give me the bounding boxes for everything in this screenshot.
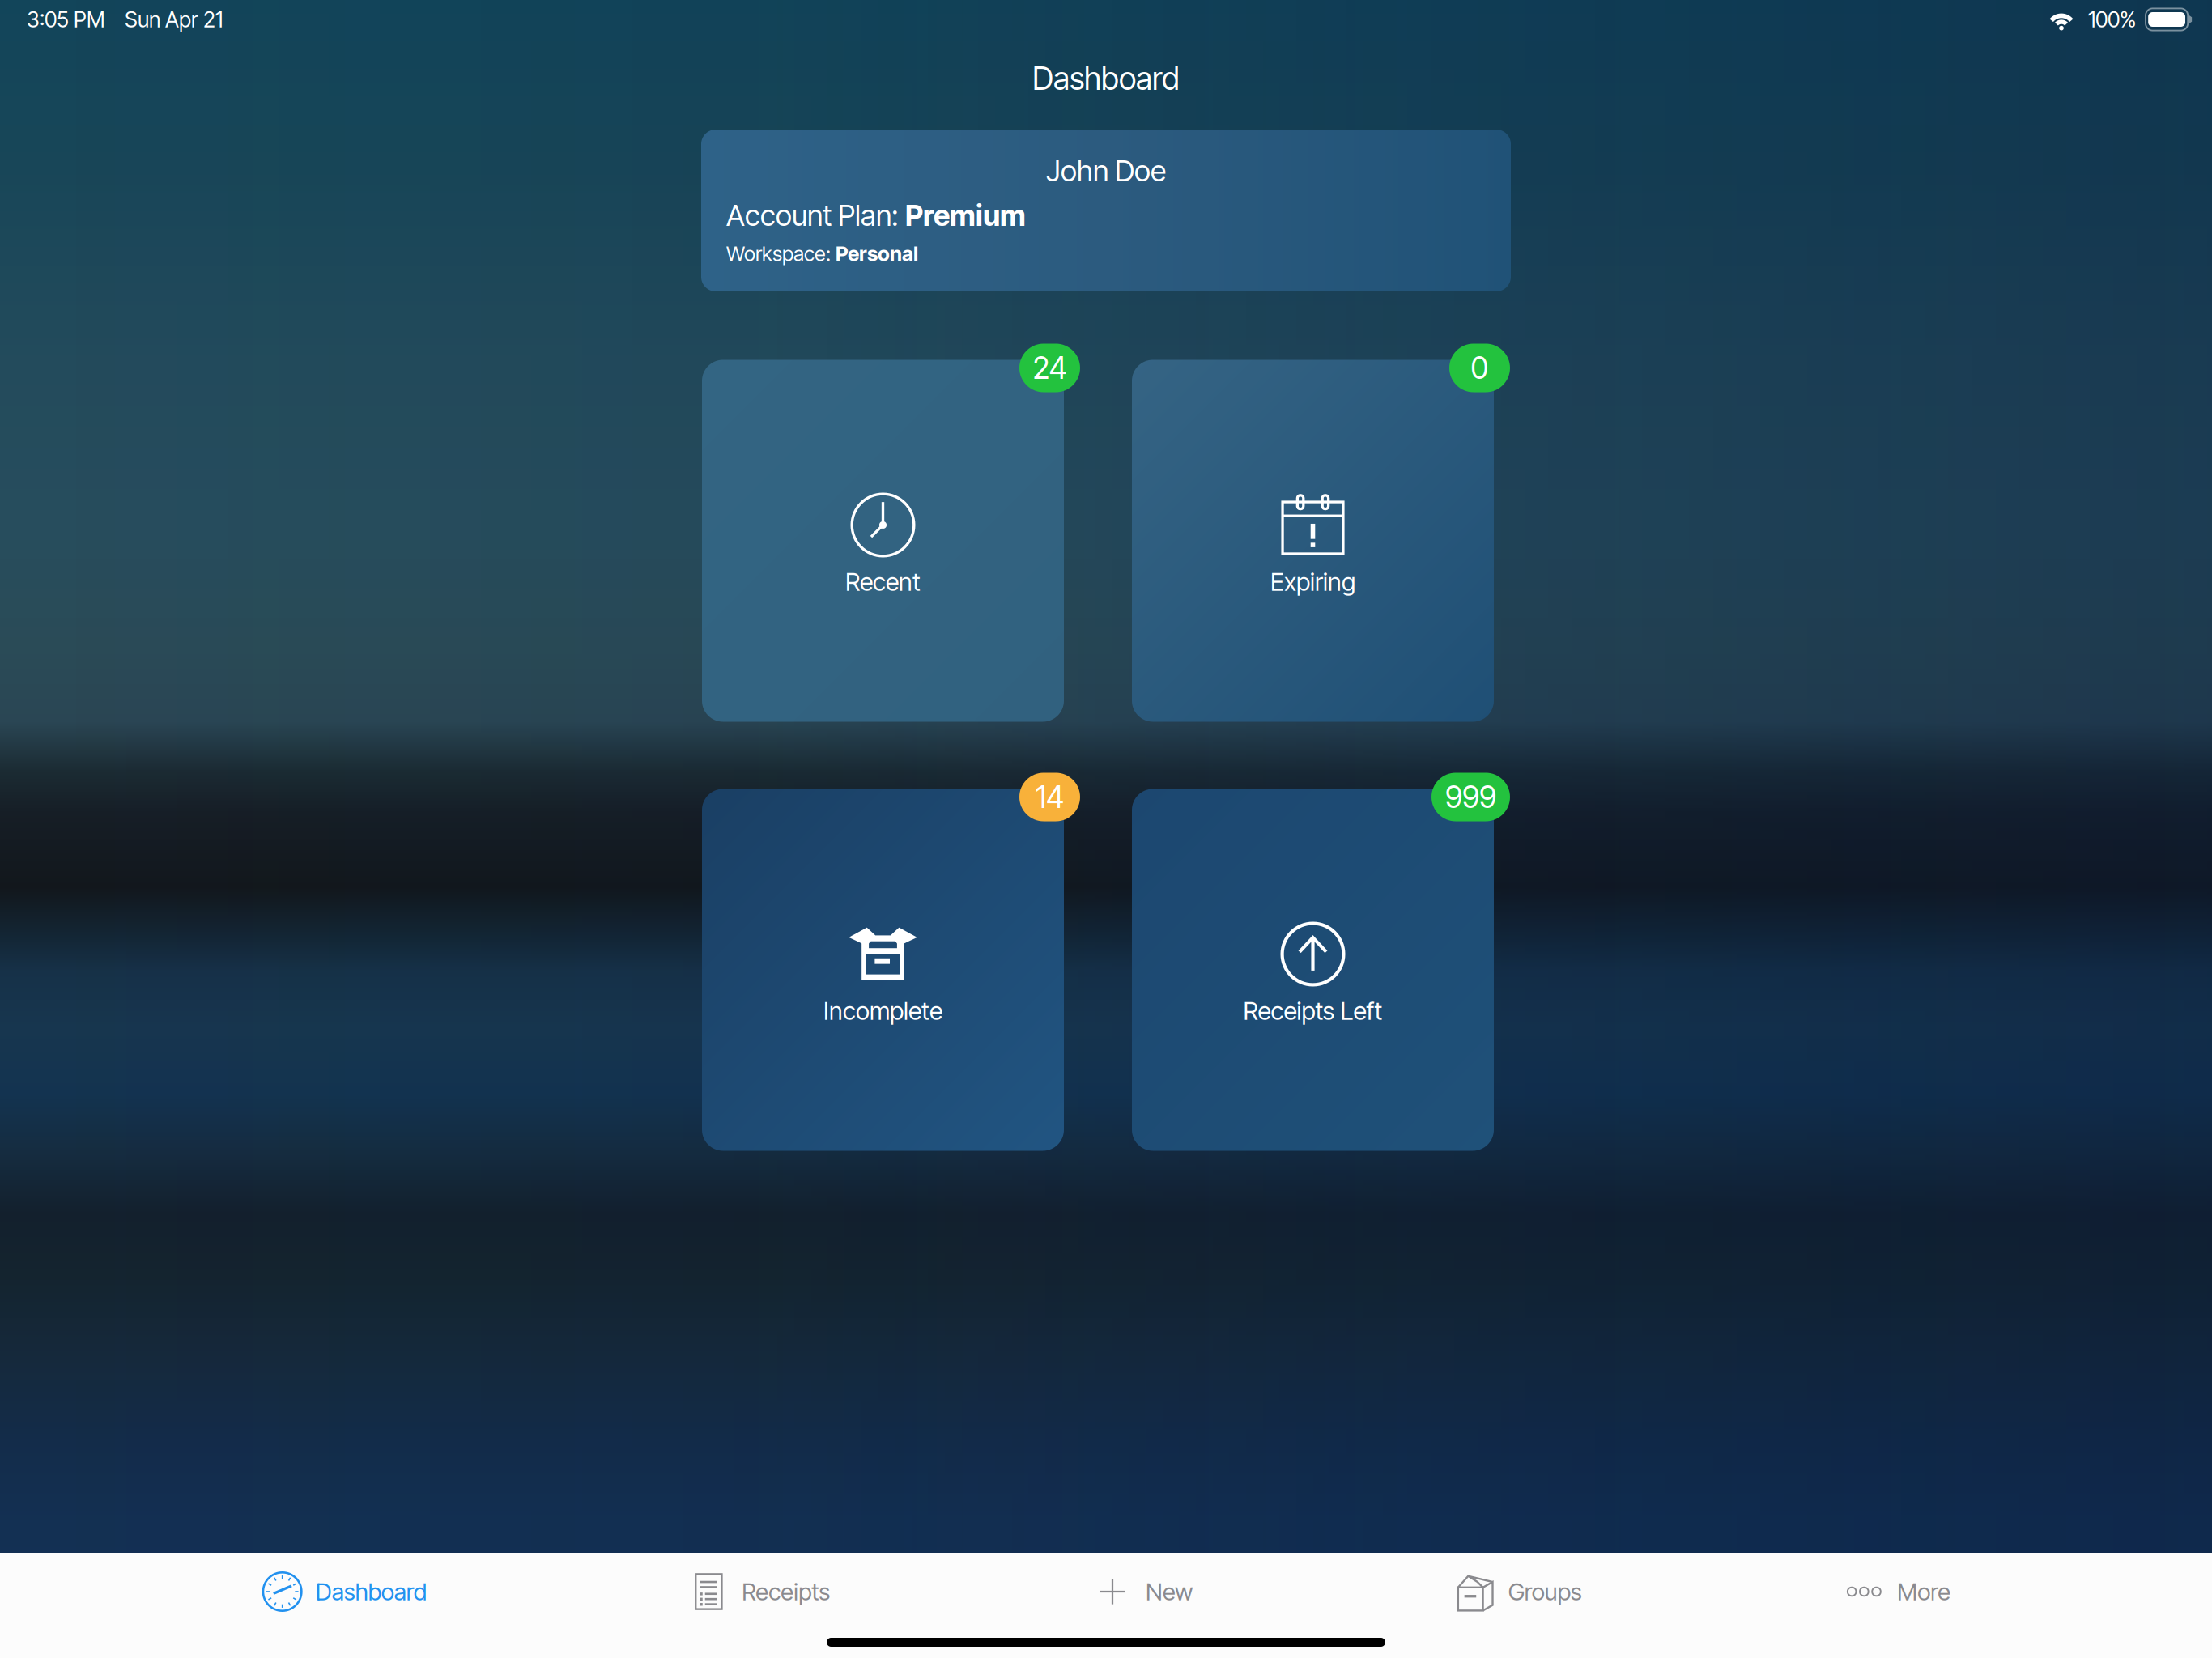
staticText: 3:05 PM [27, 6, 105, 33]
staticText: More [1897, 1577, 1951, 1606]
staticText: Receipts [742, 1577, 830, 1606]
button[interactable]: Receipts [688, 1553, 830, 1630]
staticText: Expiring [1270, 567, 1355, 597]
staticText: Dashboard [316, 1577, 426, 1606]
button[interactable]: Incomplete [702, 789, 1064, 1151]
staticText: Groups [1508, 1577, 1582, 1606]
staticText: John Doe [1046, 153, 1166, 188]
staticText: 100% [2088, 6, 2136, 33]
button[interactable]: Expiring [1132, 360, 1494, 722]
button[interactable]: More [1843, 1553, 1951, 1630]
staticText: Receipts Left [1243, 996, 1382, 1026]
staticText: Workspace: [726, 241, 836, 266]
button[interactable]: New [1091, 1553, 1193, 1630]
staticText: 24 [1033, 350, 1067, 386]
button[interactable]: Groups [1454, 1553, 1582, 1630]
staticText: Recent [845, 567, 921, 597]
button[interactable]: Receipts Left [1132, 789, 1494, 1151]
staticText: 14 [1036, 779, 1064, 815]
button[interactable]: Recent [702, 360, 1064, 722]
button[interactable]: Dashboard [261, 1553, 426, 1630]
staticText: Personal [836, 241, 918, 266]
staticText: 999 [1445, 779, 1496, 815]
staticText: Dashboard [1032, 60, 1180, 97]
staticText: 0 [1471, 350, 1489, 386]
staticText: Premium [905, 198, 1026, 233]
staticText: Incomplete [823, 996, 942, 1026]
staticText: New [1146, 1577, 1193, 1606]
staticText: Account Plan: [726, 198, 905, 233]
staticText: Sun Apr 21 [125, 6, 223, 33]
